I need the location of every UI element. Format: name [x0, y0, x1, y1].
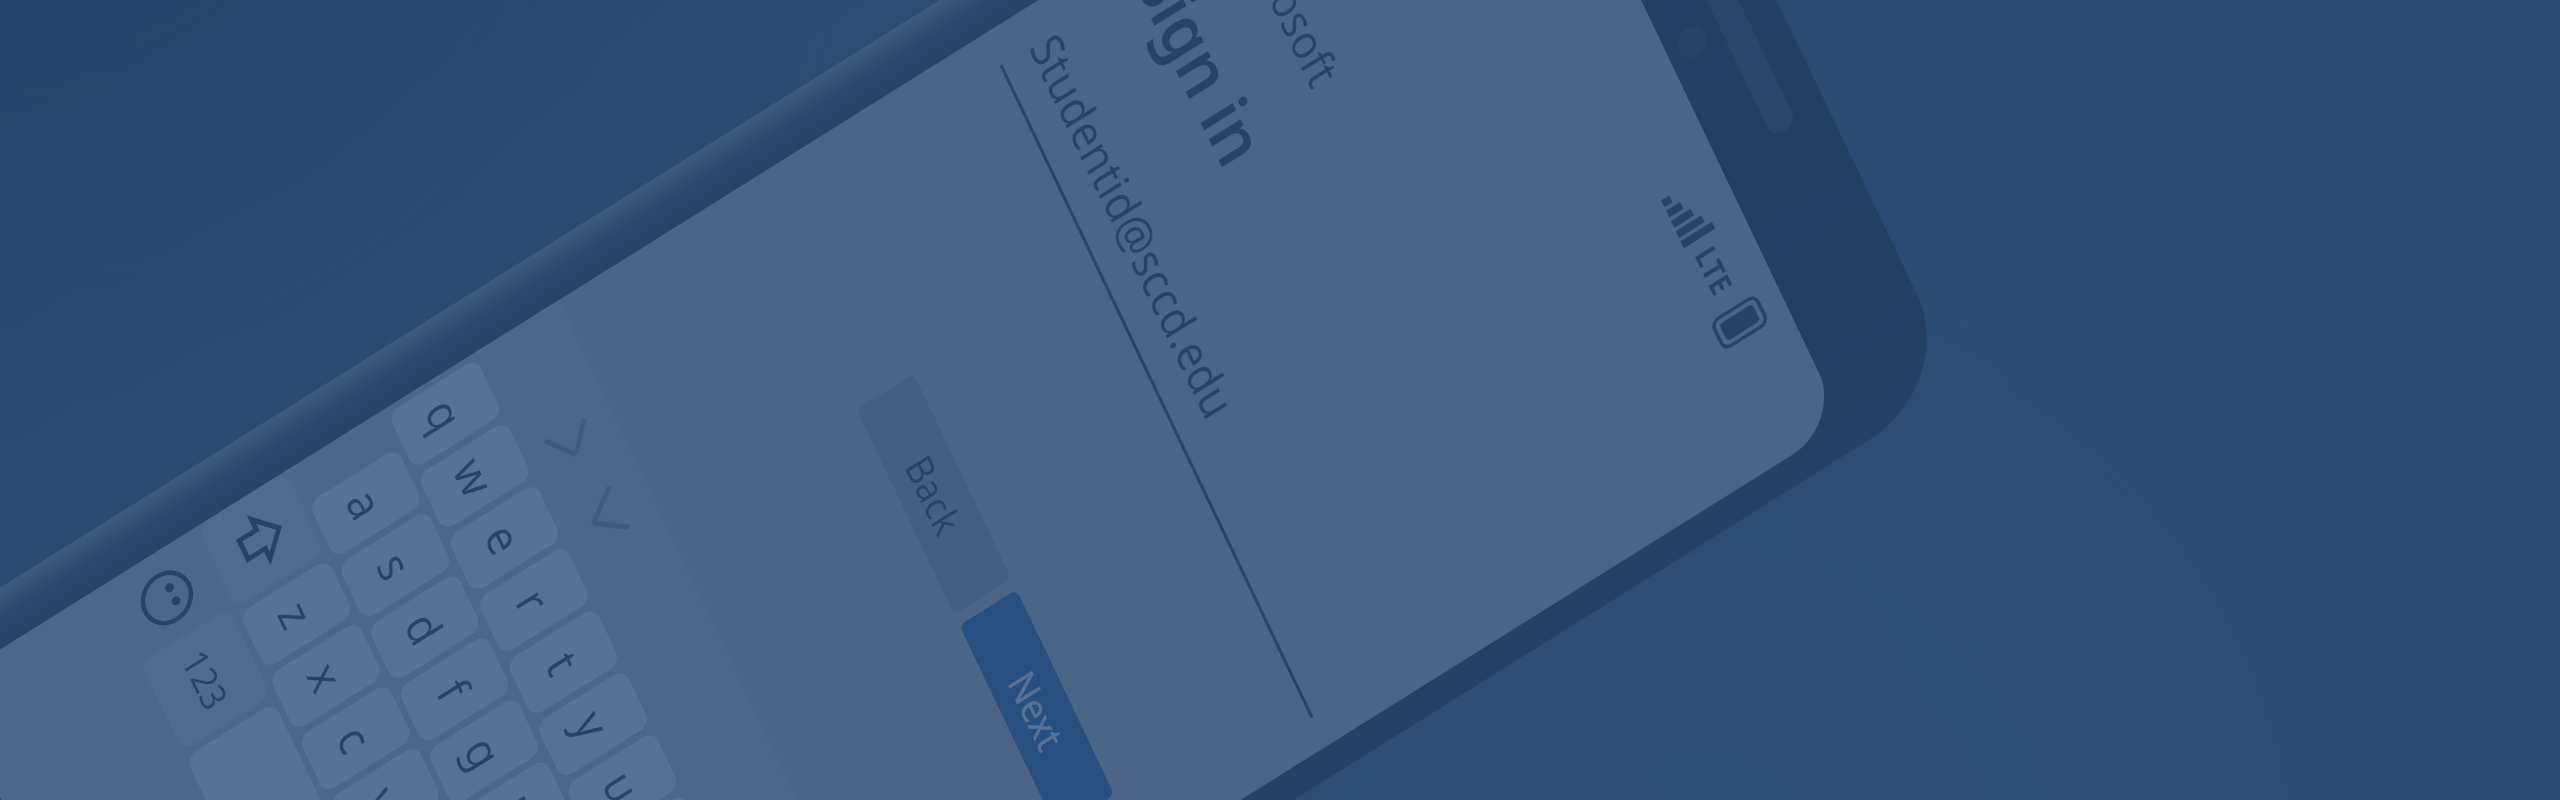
staticText: f [419, 651, 489, 728]
staticText: t [528, 624, 599, 702]
staticText: s [357, 525, 433, 607]
button[interactable]: g [409, 672, 559, 800]
staticText: Sign in [1057, 0, 1347, 204]
staticText: z [258, 573, 334, 655]
button[interactable]: v [310, 721, 461, 800]
button[interactable]: e [429, 459, 580, 617]
staticText: y [554, 683, 631, 766]
staticText: g [443, 708, 525, 796]
button[interactable]: j [468, 796, 619, 800]
staticText: r [497, 561, 570, 640]
button[interactable]: a [290, 424, 441, 583]
staticText: q [404, 371, 486, 459]
button[interactable]: y [518, 645, 668, 800]
staticText: LTE [1673, 228, 1756, 313]
button[interactable]: s [320, 486, 471, 645]
staticText: w [430, 429, 519, 524]
button[interactable]: f [379, 610, 530, 769]
button[interactable]: b [339, 783, 490, 800]
staticText: c [317, 697, 394, 780]
button[interactable]: u [547, 707, 698, 800]
staticText: u [581, 743, 663, 800]
button[interactable]: t [488, 583, 639, 741]
button[interactable]: i [577, 769, 728, 800]
button[interactable]: h [438, 734, 589, 800]
button[interactable]: c [280, 659, 431, 800]
staticText: d [384, 584, 466, 672]
staticText: x [287, 634, 365, 719]
staticText: Microsoft [1166, 0, 1407, 112]
staticText: v [346, 758, 423, 800]
staticText: Back [872, 432, 997, 557]
staticText: Studentid@sccd.edu [899, 7, 1367, 445]
button[interactable]: d [350, 548, 500, 707]
button[interactable]: 123 [113, 584, 299, 775]
button[interactable]: z [221, 535, 372, 693]
button[interactable]: w [399, 397, 550, 555]
button[interactable]: q [370, 335, 520, 493]
button[interactable]: Emoji [81, 509, 253, 687]
staticText: 123 [155, 629, 256, 731]
staticText: a [326, 461, 405, 546]
staticText: h [472, 770, 554, 800]
staticText: e [464, 496, 543, 581]
staticText: Next [975, 648, 1099, 772]
button[interactable]: Back [792, 358, 1076, 630]
button[interactable]: Shift [171, 447, 350, 631]
button[interactable]: Next [895, 574, 1179, 800]
button[interactable]: r [458, 521, 609, 679]
button[interactable]: space [97, 678, 496, 800]
button[interactable]: x [251, 597, 401, 755]
